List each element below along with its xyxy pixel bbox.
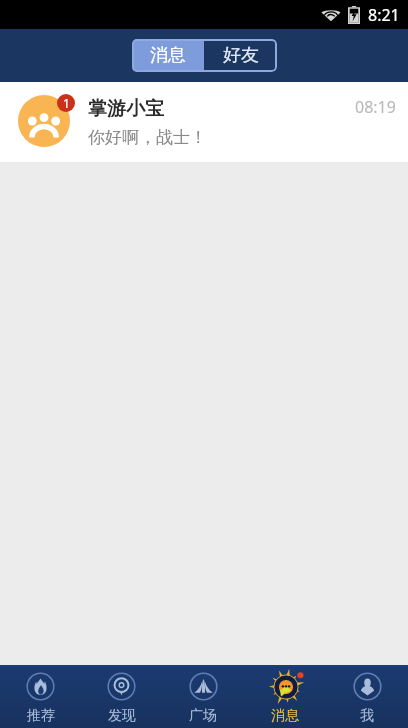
button[interactable]: 广场 [162, 665, 244, 728]
button[interactable]: 消息 [244, 665, 326, 728]
button[interactable]: 1 [0, 82, 408, 162]
button[interactable]: 推荐 [0, 665, 81, 728]
staticText: 发现 [108, 707, 136, 725]
staticText: 你好啊，战士！ [88, 127, 207, 148]
button[interactable]: 好友 [204, 39, 277, 72]
staticText: 掌游小宝 [88, 97, 164, 121]
staticText: 8:21 [368, 4, 400, 26]
staticText: 广场 [189, 707, 217, 725]
button[interactable]: 我 [326, 665, 408, 728]
staticText: 我 [360, 707, 374, 725]
staticText: 08:19 [355, 96, 396, 118]
staticText: 推荐 [27, 707, 55, 725]
staticText: 好友 [223, 44, 259, 67]
staticText: 1 [63, 95, 70, 111]
button[interactable]: 消息 [132, 39, 204, 72]
staticText: 消息 [150, 44, 186, 67]
staticText: 消息 [271, 707, 299, 725]
button[interactable]: 发现 [81, 665, 162, 728]
